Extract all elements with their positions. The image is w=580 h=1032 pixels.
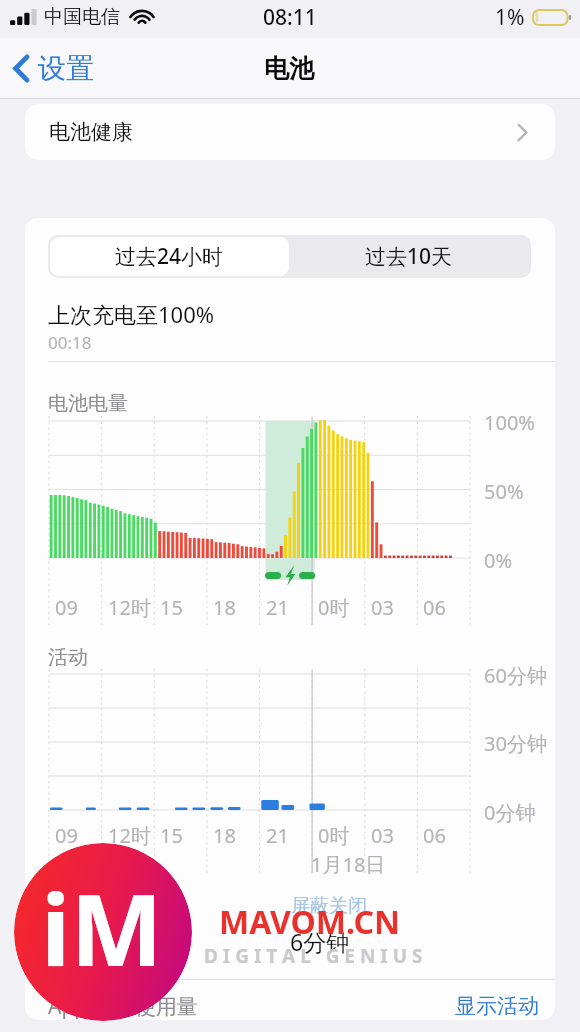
button[interactable]: 电池健康 (25, 104, 555, 160)
button[interactable]: 设置 (0, 46, 106, 91)
button[interactable]: 过去24小时 (50, 237, 289, 276)
staticText: 电池 (264, 53, 314, 84)
staticText: 0时 (318, 594, 350, 621)
staticText: 08:11 (263, 3, 317, 32)
staticText: 设置 (38, 51, 94, 86)
staticText: iM (41, 861, 163, 994)
staticText: 过去10天 (365, 242, 453, 271)
staticText: 21 (266, 822, 289, 849)
staticText: 1% (495, 3, 525, 32)
staticText: 03 (371, 594, 394, 621)
staticText: 屏蔽关闭 (291, 894, 367, 918)
staticText: 06 (423, 594, 446, 621)
staticText: 06 (423, 822, 446, 849)
staticText: 30分钟 (484, 730, 547, 757)
staticText: 12时 (108, 594, 151, 621)
staticText: 电池电量 (48, 391, 128, 416)
staticText: 活动 (48, 645, 88, 670)
staticText: 21 (266, 594, 289, 621)
staticText: 电池健康 (49, 119, 133, 145)
staticText: 显示活动 (455, 993, 539, 1019)
staticText: 15 (160, 822, 183, 849)
staticText: 0% (484, 547, 513, 574)
staticText: 12时 (108, 822, 151, 849)
staticText: 0时 (318, 822, 350, 849)
staticText: 18 (213, 594, 236, 621)
staticText: 09 (55, 594, 78, 621)
staticText: 00:18 (48, 331, 92, 354)
staticText: 0分钟 (484, 799, 536, 826)
staticText: 15 (160, 594, 183, 621)
staticText: 100% (484, 409, 535, 436)
button[interactable]: 过去10天 (289, 237, 529, 276)
staticText: 中国电信 (44, 5, 120, 29)
staticText: 6分钟 (290, 926, 350, 957)
staticText: 上次充电至100% (48, 299, 215, 329)
staticText: 09 (55, 822, 78, 849)
staticText: App 电池使用量 (48, 992, 198, 1021)
button[interactable]: 显示活动 (450, 988, 544, 1024)
staticText: MAVOM.CN (219, 900, 400, 944)
staticText: 1月18日 (311, 851, 386, 878)
staticText: 50% (484, 478, 524, 505)
staticText: 过去24小时 (115, 242, 224, 271)
staticText: 60分钟 (484, 662, 547, 689)
staticText: 18 (213, 822, 236, 849)
staticText: 03 (371, 822, 394, 849)
staticText: D I G I T A L G E N I U S (204, 943, 423, 969)
